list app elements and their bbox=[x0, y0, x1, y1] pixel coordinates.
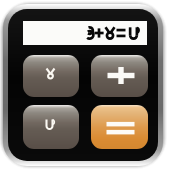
button[interactable]: Eight bbox=[23, 55, 79, 97]
button[interactable]: Plus bbox=[91, 55, 148, 97]
button[interactable]: Nine bbox=[23, 105, 79, 149]
button[interactable]: Equals bbox=[91, 105, 148, 149]
